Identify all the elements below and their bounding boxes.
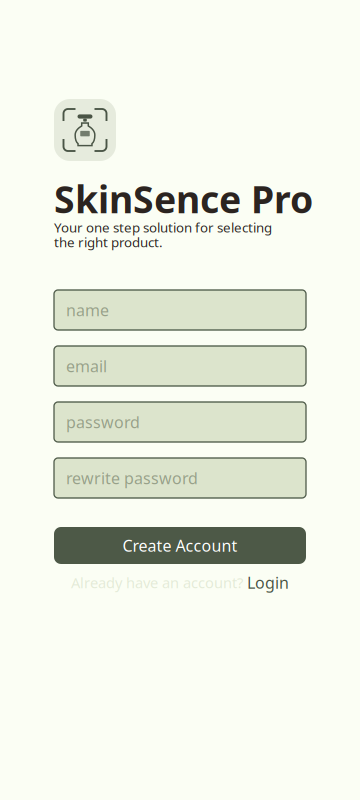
button[interactable]: Login: [247, 572, 289, 593]
staticText: Login: [247, 572, 289, 593]
staticText: email: [66, 355, 107, 377]
button[interactable]: password: [54, 402, 306, 442]
button[interactable]: name: [54, 290, 306, 330]
staticText: password: [66, 411, 140, 433]
staticText: Your one step solution for selecting the…: [54, 219, 272, 251]
staticText: SkinSence Pro: [54, 174, 313, 224]
staticText: name: [66, 299, 109, 321]
staticText: Already have an account?: [71, 573, 247, 592]
button[interactable]: rewrite password: [54, 458, 306, 498]
staticText: rewrite password: [66, 467, 198, 489]
button[interactable]: Create Account: [54, 527, 306, 564]
button[interactable]: email: [54, 346, 306, 386]
staticText: Create Account: [122, 535, 237, 556]
